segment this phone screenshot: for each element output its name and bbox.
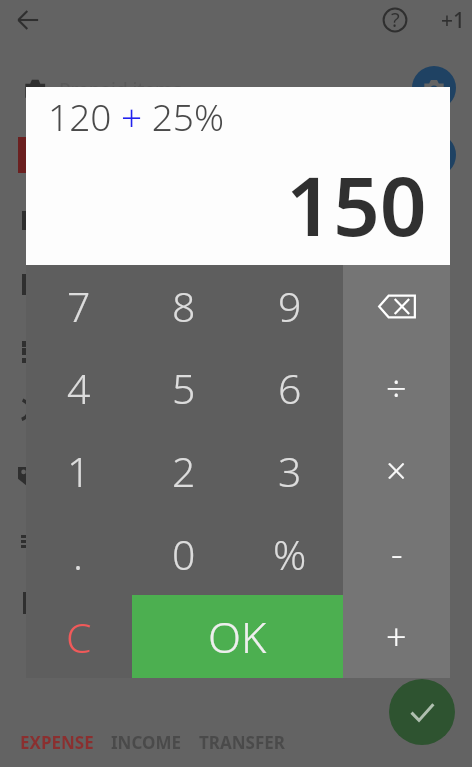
button[interactable]: 1: [26, 429, 131, 512]
staticText: ÷: [386, 364, 407, 413]
staticText: TRANSFER: [199, 731, 285, 754]
staticText: ×: [386, 446, 407, 495]
staticText: 8: [172, 278, 196, 334]
staticText: 0: [172, 526, 196, 582]
staticText: EXPENSE: [20, 731, 94, 754]
button[interactable]: 3: [237, 429, 343, 512]
staticText: -: [391, 529, 403, 578]
button[interactable]: 5: [131, 347, 237, 429]
button[interactable]: ÷: [343, 347, 450, 429]
button[interactable]: -: [343, 512, 450, 595]
button[interactable]: +: [343, 595, 450, 678]
staticText: INCOME: [111, 731, 182, 754]
button[interactable]: 7: [26, 265, 131, 347]
button[interactable]: TRANSFER: [197, 731, 287, 754]
staticText: 9: [278, 278, 302, 334]
button[interactable]: Save: [389, 679, 455, 745]
button[interactable]: EXPENSE: [18, 731, 96, 754]
staticText: ?: [391, 6, 400, 33]
button[interactable]: 2: [131, 429, 237, 512]
staticText: +: [386, 612, 407, 661]
button[interactable]: OK: [132, 595, 343, 678]
button[interactable]: 9: [237, 265, 343, 347]
button[interactable]: %: [237, 512, 343, 595]
button[interactable]: ×: [343, 429, 450, 512]
staticText: 5: [172, 360, 196, 416]
button[interactable]: Back: [12, 4, 44, 36]
button[interactable]: Backspace: [343, 265, 450, 347]
button[interactable]: C: [26, 595, 132, 678]
staticText: 2: [172, 443, 196, 499]
staticText: 1: [67, 443, 91, 499]
button[interactable]: 0: [131, 512, 237, 595]
button[interactable]: INCOME: [109, 731, 184, 754]
button[interactable]: .: [26, 512, 131, 595]
staticText: 4: [67, 360, 91, 416]
staticText: 7: [67, 278, 91, 334]
staticText: C: [66, 609, 92, 665]
staticText: 3: [278, 443, 302, 499]
staticText: .: [73, 526, 84, 582]
staticText: OK: [208, 607, 267, 666]
button[interactable]: 8: [131, 265, 237, 347]
button[interactable]: 6: [237, 347, 343, 429]
button[interactable]: 4: [26, 347, 131, 429]
button[interactable]: Add account: [433, 0, 472, 40]
staticText: %: [273, 526, 307, 582]
staticText: +1: [441, 6, 466, 35]
staticText: 120 + 25%: [48, 91, 225, 141]
staticText: 150: [286, 148, 427, 260]
button[interactable]: Help: [375, 0, 415, 40]
staticText: 6: [278, 360, 302, 416]
staticText: Prepaid items: [59, 77, 182, 103]
